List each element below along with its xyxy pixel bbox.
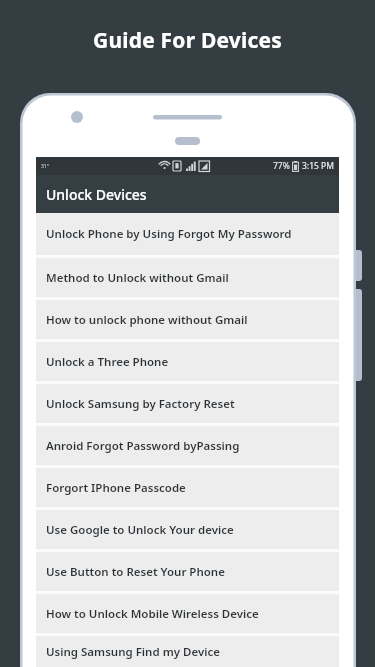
staticText: How to unlock phone without Gmail (46, 312, 248, 328)
button[interactable]: Unlock a Three Phone (36, 342, 339, 381)
staticText: Unlock a Three Phone (46, 354, 169, 370)
staticText: How to Unlock Mobile Wireless Device (46, 606, 259, 622)
button[interactable]: Using Samsung Find my Device (36, 636, 339, 667)
button[interactable]: How to unlock phone without Gmail (36, 300, 339, 339)
staticText: Unlock Samsung by Factory Reset (46, 396, 235, 412)
button[interactable]: Use Button to Reset Your Phone (36, 552, 339, 591)
staticText: Use Button to Reset Your Phone (46, 564, 225, 580)
button[interactable]: Use Google to Unlock Your device (36, 510, 339, 549)
staticText: Guide For Devices (0, 26, 375, 55)
staticText: 3:15 PM (302, 160, 334, 172)
staticText: 77% (273, 160, 290, 172)
staticText: 31° (41, 163, 49, 170)
staticText: Unlock Phone by Using Forgot My Password (46, 226, 292, 242)
staticText: Use Google to Unlock Your device (46, 522, 234, 538)
button[interactable]: How to Unlock Mobile Wireless Device (36, 594, 339, 633)
staticText: Using Samsung Find my Device (46, 644, 220, 660)
other: Status icons (157, 160, 273, 172)
staticText: Forgort IPhone Passcode (46, 480, 186, 496)
button[interactable]: Method to Unlock without Gmail (36, 258, 339, 297)
staticText: Method to Unlock without Gmail (46, 270, 229, 286)
button[interactable]: Unlock Samsung by Factory Reset (36, 384, 339, 423)
staticText: Unlock Devices (46, 185, 147, 204)
button[interactable]: Forgort IPhone Passcode (36, 468, 339, 507)
staticText: Anroid Forgot Password byPassing (46, 438, 240, 454)
button[interactable]: Anroid Forgot Password byPassing (36, 426, 339, 465)
button[interactable]: Unlock Phone by Using Forgot My Password (36, 213, 339, 255)
